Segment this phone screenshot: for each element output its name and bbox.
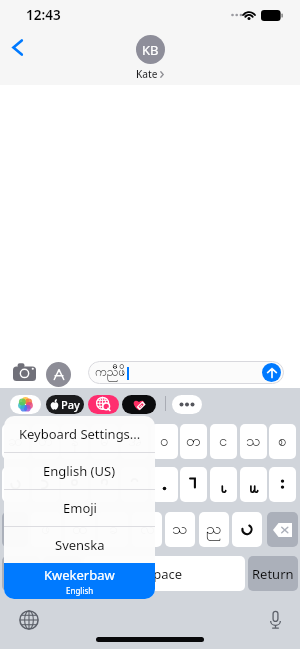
button[interactable]: Emoji (43, 556, 81, 591)
staticText: အ (128, 431, 142, 453)
button[interactable]: Dictate (262, 607, 288, 633)
button[interactable]: space (84, 556, 245, 591)
button[interactable]: မ (91, 424, 118, 459)
button[interactable]: Shift (2, 512, 28, 547)
staticText: သ (172, 518, 188, 542)
button[interactable]: key (210, 467, 237, 502)
staticText: Kate (136, 67, 158, 81)
staticText: space (147, 565, 183, 583)
button[interactable]: key (151, 467, 178, 502)
button[interactable]: င (210, 424, 237, 459)
button[interactable]: Back (2, 32, 32, 62)
button[interactable]: သ (240, 424, 267, 459)
button[interactable]: တ (32, 424, 59, 459)
button[interactable]: 123 (2, 556, 40, 591)
staticText: ကညီဖိ (95, 364, 126, 382)
button[interactable]: အ (121, 424, 148, 459)
button[interactable]: Image search (88, 395, 119, 414)
staticText: စ (278, 431, 287, 453)
button[interactable]: More apps (172, 395, 202, 414)
staticText: KB (142, 41, 159, 59)
button[interactable]: Svenska (4, 527, 155, 563)
button[interactable]: ဖ (31, 512, 61, 547)
staticText: င (219, 431, 228, 453)
staticText: Svenska (55, 536, 105, 554)
button[interactable]: App Store (46, 362, 71, 387)
staticText: ထ (72, 518, 88, 542)
staticText: ဆ (8, 431, 23, 453)
button[interactable]: key (91, 467, 118, 502)
staticText: သ (246, 431, 261, 453)
staticText: မ (100, 431, 109, 453)
staticText: ခ (109, 518, 118, 542)
staticText: English (US) (43, 462, 116, 480)
button[interactable]: key (2, 467, 29, 502)
staticText: Emoji (63, 499, 97, 517)
button[interactable]: key (180, 467, 207, 502)
staticText: ည (206, 518, 222, 542)
staticText: Kwekerbaw (44, 566, 115, 584)
button[interactable]: key (61, 467, 88, 502)
staticText: ဖ (41, 518, 51, 542)
button[interactable]: KB (0, 35, 300, 81)
button[interactable]: တ (180, 424, 207, 459)
button[interactable]: Apple Pay (46, 395, 84, 414)
staticText: တ (186, 431, 201, 453)
button[interactable]: Keyboard Settings... (4, 416, 155, 452)
button[interactable]: Change keyboard (16, 607, 42, 633)
button[interactable]: Digital Touch (122, 395, 156, 414)
button[interactable]: English (US) (4, 453, 155, 489)
button[interactable]: key (32, 467, 59, 502)
button[interactable]: ဝ (151, 424, 178, 459)
staticText: 12:43 (26, 6, 61, 24)
button[interactable]: Return (248, 556, 298, 591)
button[interactable]: လ (132, 512, 162, 547)
button[interactable]: ခ (98, 512, 128, 547)
button[interactable]: Photos (10, 395, 41, 414)
button[interactable]: key (121, 467, 148, 502)
staticText: လ (140, 518, 155, 542)
staticText: တ (38, 431, 53, 453)
button[interactable]: Camera (11, 361, 37, 383)
button[interactable]: key (240, 467, 267, 502)
staticText: Keyboard Settings... (19, 425, 141, 443)
button[interactable]: key (269, 467, 296, 502)
staticText: English (66, 585, 94, 596)
button[interactable]: စ (269, 424, 296, 459)
button[interactable]: ထ (65, 512, 95, 547)
button[interactable]: Emoji (4, 490, 155, 526)
button[interactable]: Send (262, 363, 281, 382)
staticText: Pay (61, 397, 80, 412)
button[interactable]: ဆ (2, 424, 29, 459)
button[interactable]: Kwekerbaw (4, 563, 155, 599)
button[interactable]: key (232, 512, 262, 547)
staticText: Return (252, 565, 294, 583)
button[interactable]: Backspace (267, 512, 298, 547)
button[interactable]: ကညီဖိ (88, 361, 284, 384)
button[interactable]: သ (165, 512, 195, 547)
staticText: န (71, 431, 79, 453)
staticText: ဝ (160, 431, 169, 453)
button[interactable]: ည (199, 512, 229, 547)
button[interactable]: န (61, 424, 88, 459)
